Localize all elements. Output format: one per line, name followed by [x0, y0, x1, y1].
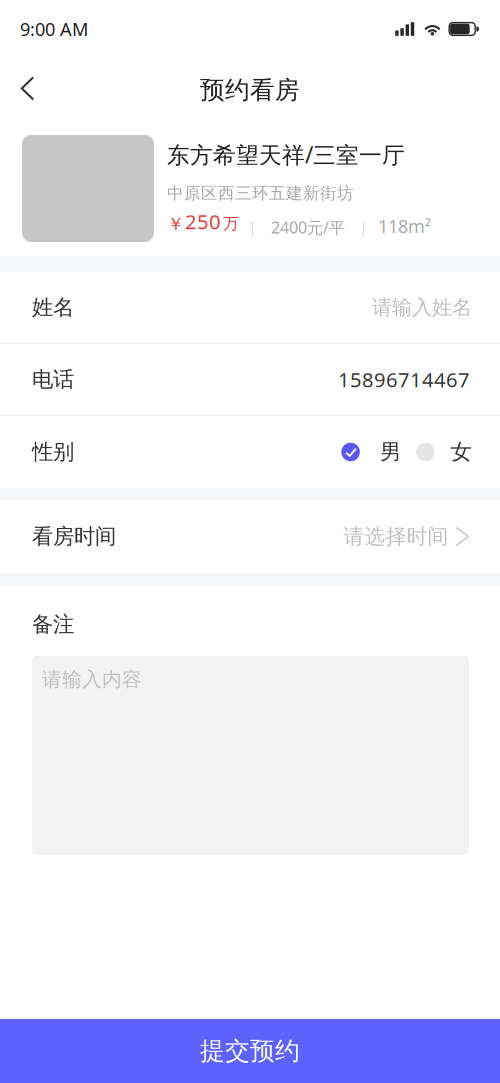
button[interactable]: 提交预约: [0, 1019, 500, 1083]
button[interactable]: Back: [0, 64, 55, 120]
staticText: 250: [185, 208, 221, 235]
staticText: ￥: [167, 213, 184, 235]
staticText: 中原区西三环五建新街坊: [167, 183, 354, 204]
staticText: 男: [380, 439, 401, 465]
button[interactable]: 姓名: [0, 272, 500, 343]
staticText: 预约看房: [200, 74, 300, 105]
button[interactable]: 男: [341, 439, 401, 465]
staticText: 备注: [32, 611, 74, 638]
button[interactable]: 女: [416, 439, 471, 465]
staticText: 2400元/平: [271, 216, 345, 238]
staticText: 请输入姓名: [372, 295, 472, 320]
button[interactable]: 看房时间: [0, 500, 500, 573]
staticText: 提交预约: [200, 1035, 300, 1067]
staticText: |: [359, 216, 368, 238]
staticText: 女: [450, 439, 471, 465]
button[interactable]: 电话: [0, 344, 500, 415]
staticText: 请选择时间: [343, 523, 448, 550]
staticText: 东方希望天祥/三室一厅: [167, 139, 405, 170]
staticText: 电话: [32, 366, 74, 393]
staticText: 15896714467: [338, 366, 470, 393]
staticText: |: [248, 216, 257, 238]
button[interactable]: 请输入内容: [32, 656, 469, 855]
staticText: 9:00 AM: [20, 17, 88, 41]
staticText: 118m²: [378, 214, 431, 238]
staticText: 请输入内容: [42, 667, 142, 692]
staticText: 万: [223, 214, 239, 234]
staticText: 性别: [32, 439, 74, 465]
staticText: 姓名: [32, 294, 74, 321]
staticText: 看房时间: [32, 523, 116, 550]
